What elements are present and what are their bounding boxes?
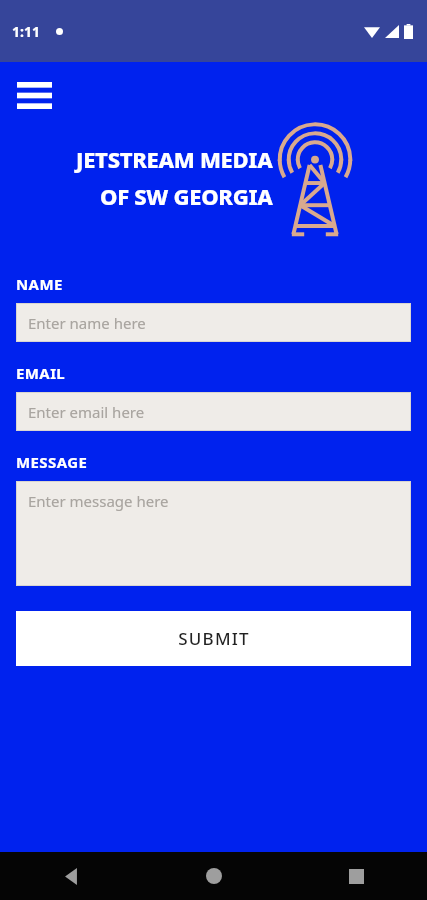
button[interactable]: Home (143, 852, 285, 900)
staticText: EMAIL (16, 363, 66, 383)
button[interactable]: Back (0, 852, 143, 900)
staticText: SUBMIT (178, 627, 250, 650)
staticText: Enter message here (28, 491, 169, 511)
staticText: Enter email here (28, 402, 145, 422)
button[interactable]: SUBMIT (16, 611, 411, 666)
staticText: 1:11 (12, 22, 40, 41)
button[interactable]: Enter name here (16, 303, 411, 342)
button[interactable]: Recent apps (285, 852, 427, 900)
staticText: MESSAGE (16, 452, 88, 472)
staticText: JETSTREAM MEDIA (76, 144, 273, 174)
staticText: Enter name here (28, 313, 146, 333)
staticText: OF SW GEORGIA (100, 181, 273, 211)
button[interactable]: Enter email here (16, 392, 411, 431)
button[interactable]: Enter message here (16, 481, 411, 586)
button[interactable]: Open navigation menu (12, 76, 56, 114)
staticText: NAME (16, 274, 63, 294)
